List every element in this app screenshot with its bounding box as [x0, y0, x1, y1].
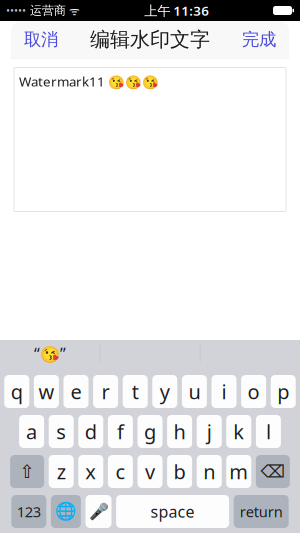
staticText: 完成	[242, 29, 276, 50]
button[interactable]: s	[49, 415, 74, 448]
button[interactable]: n	[197, 455, 222, 488]
staticText: d	[85, 418, 97, 445]
button[interactable]: 123	[11, 495, 46, 528]
staticText: p	[277, 378, 289, 405]
staticText: k	[233, 418, 244, 445]
button[interactable]: Next keyboard	[51, 495, 81, 528]
staticText: g	[144, 418, 156, 445]
staticText: u	[188, 378, 200, 405]
staticText: e	[70, 378, 81, 405]
staticText: v	[145, 458, 155, 485]
button[interactable]: e	[63, 375, 88, 408]
button[interactable]: c	[108, 455, 133, 488]
staticText: space	[151, 501, 195, 522]
staticText: 上午 11:36	[144, 2, 209, 19]
staticText: z	[57, 458, 66, 485]
staticText: a	[26, 418, 37, 445]
button[interactable]: q	[4, 375, 29, 408]
button[interactable]: w	[34, 375, 59, 408]
button[interactable]: x	[78, 455, 103, 488]
staticText: m	[229, 458, 248, 485]
staticText: n	[203, 458, 215, 485]
staticText: x	[85, 458, 96, 485]
button[interactable]: i	[211, 375, 236, 408]
button[interactable]: p	[271, 375, 296, 408]
staticText: f	[117, 418, 124, 445]
staticText: 编辑水印文字	[90, 27, 210, 52]
button[interactable]: return	[234, 495, 289, 528]
staticText: l	[266, 418, 271, 445]
button[interactable]: z	[49, 455, 74, 488]
button[interactable]: Watermark11 😘😘😘	[14, 67, 286, 211]
staticText: i	[221, 378, 226, 405]
button[interactable]: 取消	[14, 21, 68, 58]
staticText: w	[38, 378, 54, 405]
button[interactable]: space	[116, 495, 229, 528]
staticText: ⌫	[260, 462, 285, 481]
staticText: t	[132, 378, 139, 405]
staticText: o	[248, 378, 260, 405]
button[interactable]: “😘”	[0, 340, 100, 367]
staticText: r	[102, 378, 110, 405]
staticText: j	[207, 418, 212, 445]
button[interactable]: g	[137, 415, 162, 448]
staticText: Watermark11 😘😘😘	[19, 72, 159, 90]
staticText: q	[11, 378, 23, 405]
button[interactable]: j	[197, 415, 222, 448]
staticText: 🌐	[55, 502, 77, 521]
staticText: •••••	[6, 3, 26, 18]
staticText: “😘”	[34, 343, 66, 364]
button[interactable]: h	[167, 415, 192, 448]
button[interactable]: l	[256, 415, 281, 448]
button[interactable]: y	[152, 375, 177, 408]
button[interactable]: a	[19, 415, 44, 448]
staticText: s	[56, 418, 66, 445]
button[interactable]: 完成	[232, 21, 286, 58]
staticText: h	[174, 418, 186, 445]
button[interactable]: u	[182, 375, 207, 408]
staticText: return	[240, 502, 283, 521]
button[interactable]: r	[93, 375, 118, 408]
staticText: 123	[17, 502, 41, 521]
button[interactable]: t	[123, 375, 148, 408]
staticText: c	[115, 458, 125, 485]
staticText: 取消	[24, 29, 58, 50]
button[interactable]: Delete	[256, 455, 290, 488]
staticText: 运营商	[26, 3, 66, 18]
staticText: y	[160, 378, 170, 405]
button[interactable]: Dictation	[85, 495, 111, 528]
button[interactable]: o	[241, 375, 266, 408]
button[interactable]: k	[226, 415, 251, 448]
button[interactable]: b	[167, 455, 192, 488]
staticText: ᯤ	[66, 2, 80, 18]
staticText: b	[174, 458, 186, 485]
staticText: 🎤	[88, 502, 108, 521]
button[interactable]: f	[108, 415, 133, 448]
button[interactable]: Shift	[10, 455, 44, 488]
button[interactable]: d	[78, 415, 103, 448]
staticText: ⇧	[19, 461, 35, 482]
button[interactable]: m	[226, 455, 251, 488]
button[interactable]: v	[137, 455, 162, 488]
